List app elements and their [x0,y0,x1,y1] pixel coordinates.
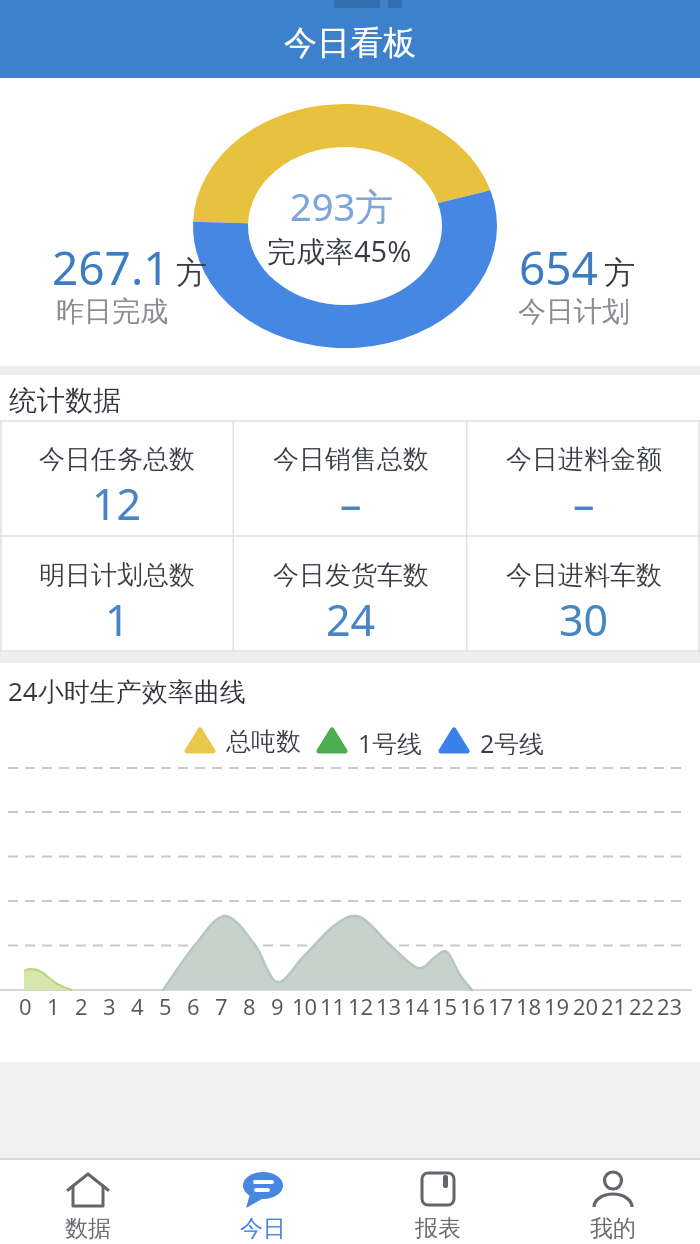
staticText: 统计数据 [9,383,121,418]
staticText: 14 [404,991,430,1017]
staticText: 9 [271,991,284,1017]
staticText: – [573,474,595,532]
staticText: 昨日完成 [56,294,168,328]
button[interactable]: 报表 [350,1160,525,1244]
button[interactable]: 今日 [175,1160,350,1244]
staticText: 30 [559,590,609,648]
staticText: 18 [516,991,542,1017]
staticText: 7 [215,991,228,1017]
staticText: 21 [601,991,627,1017]
staticText: 1 [105,590,130,648]
staticText: 今日销售总数 [273,443,429,476]
staticText: 17 [488,991,514,1017]
staticText: 16 [460,991,486,1017]
staticText: 明日计划总数 [39,559,195,592]
staticText: 报表 [415,1214,461,1243]
staticText: 4 [131,991,144,1017]
staticText: 我的 [590,1214,636,1243]
staticText: – [340,474,362,532]
staticText: 5 [159,991,172,1017]
staticText: 15 [432,991,458,1017]
staticText: 19 [544,991,570,1017]
staticText: 293方 [290,180,394,224]
staticText: 0 [19,991,32,1017]
staticText: 23 [657,991,683,1017]
staticText: 24小时生产效率曲线 [8,673,246,709]
staticText: 12 [92,474,142,532]
staticText: 完成率45% [267,231,412,267]
staticText: 13 [376,991,402,1017]
staticText: 2 [75,991,88,1017]
button[interactable]: 我的 [525,1160,700,1244]
staticText: 8 [243,991,256,1017]
staticText: 1 [47,991,60,1017]
staticText: 20 [573,991,599,1017]
staticText: 24 [326,590,376,648]
staticText: 今日发货车数 [273,559,429,592]
staticText: 654 [519,236,598,299]
staticText: 今日计划 [518,294,630,328]
staticText: 今日任务总数 [39,443,195,476]
staticText: 今日 [240,1214,286,1243]
staticText: 2号线 [480,726,545,755]
staticText: 22 [629,991,655,1017]
staticText: 今日进料金额 [506,443,662,476]
button[interactable]: 数据 [0,1160,175,1244]
staticText: 数据 [65,1214,111,1243]
staticText: 6 [187,991,200,1017]
staticText: 今日进料车数 [506,559,662,592]
staticText: 1号线 [358,726,423,755]
staticText: 10 [292,991,318,1017]
staticText: 267.1 [52,236,170,299]
staticText: 方 [176,253,207,292]
staticText: 11 [320,991,346,1017]
staticText: 12 [348,991,374,1017]
staticText: 今日看板 [284,22,416,64]
staticText: 3 [103,991,116,1017]
staticText: 总吨数 [226,726,301,755]
staticText: 方 [604,253,635,292]
